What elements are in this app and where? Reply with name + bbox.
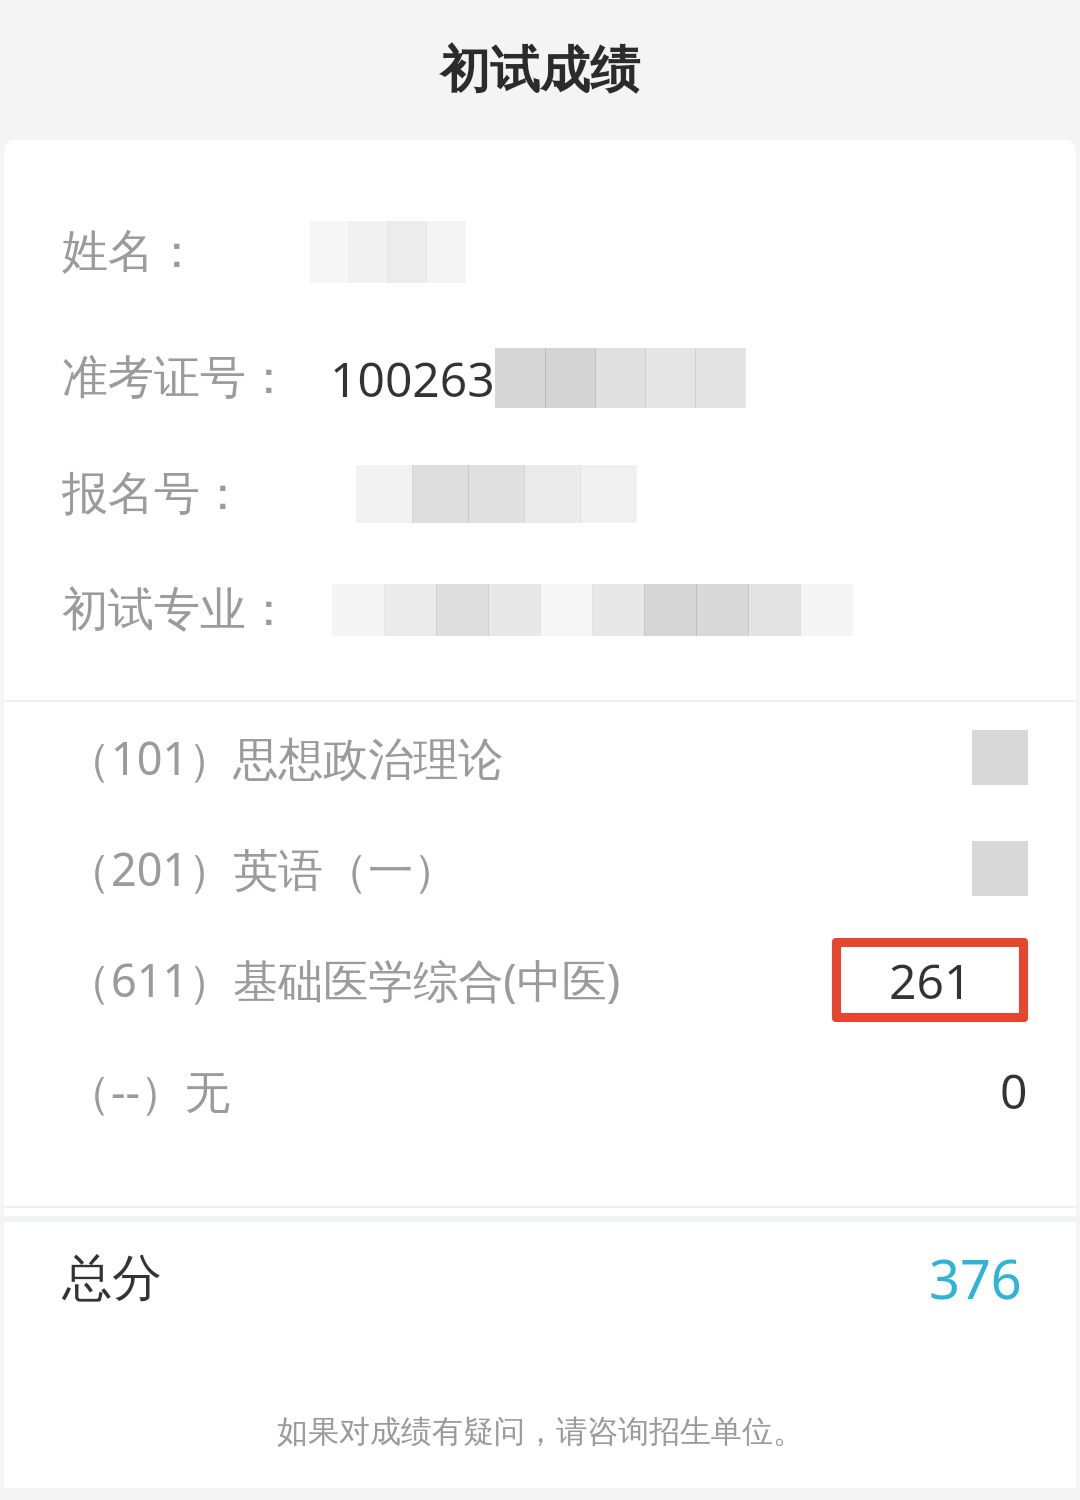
staticText: （611）基础医学综合(中医) [66, 949, 621, 1010]
staticText: （201）英语（一） [66, 838, 459, 899]
button[interactable]: 准考证号： [4, 346, 1076, 410]
button[interactable]: 总分 [4, 1222, 1076, 1334]
staticText: （101）思想政治理论 [66, 727, 504, 788]
staticText: 总分 [62, 1247, 162, 1310]
button[interactable]: （201）英语（一） [4, 813, 1076, 924]
button[interactable]: 初试专业： [4, 578, 1076, 642]
staticText: 初试成绩 [440, 39, 640, 102]
staticText: 100263 [330, 346, 495, 410]
staticText: 376 [929, 1241, 1022, 1315]
staticText: 姓名： [62, 223, 200, 281]
button[interactable]: 报名号： [4, 462, 1076, 526]
button[interactable]: （--）无 [4, 1035, 1076, 1146]
button[interactable]: 姓名： [4, 220, 1076, 284]
staticText: 0 [1000, 1058, 1028, 1123]
staticText: 初试专业： [62, 581, 292, 639]
staticText: 261 [889, 948, 972, 1013]
button[interactable]: （611）基础医学综合(中医) [4, 924, 1076, 1035]
button[interactable]: （101）思想政治理论 [4, 702, 1076, 813]
staticText: 报名号： [62, 465, 246, 523]
staticText: 准考证号： [62, 349, 292, 407]
staticText: 如果对成绩有疑问，请咨询招生单位。 [277, 1412, 804, 1451]
staticText: （--）无 [66, 1060, 230, 1121]
